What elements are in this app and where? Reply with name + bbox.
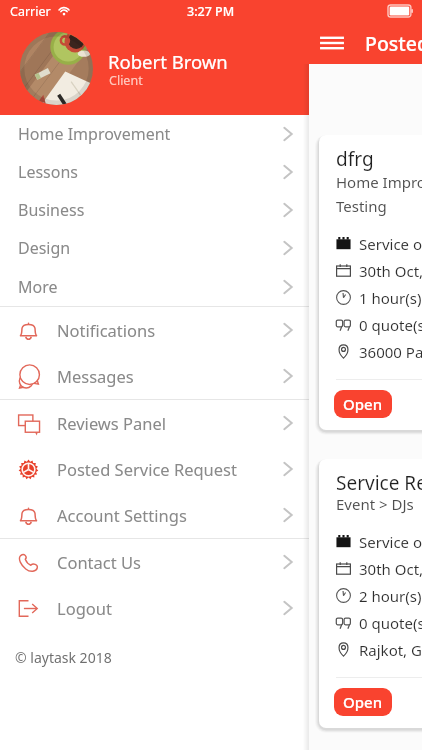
button[interactable]: More <box>0 267 309 306</box>
staticText: 36000 Paris <box>359 342 422 362</box>
staticText: Posted Service Request <box>57 458 237 480</box>
button[interactable]: Open <box>334 688 392 716</box>
staticText: Open <box>343 394 383 414</box>
button[interactable]: Notifications <box>0 307 309 353</box>
staticText: 0 quote(s) <box>359 315 422 335</box>
staticText: Service of <box>359 532 422 552</box>
staticText: 30th Oct, 2018 <box>359 261 422 281</box>
button[interactable]: Reviews Panel <box>0 400 309 446</box>
staticText: Open <box>343 692 383 712</box>
staticText: Home Improvement <box>18 123 171 145</box>
button[interactable]: Account Settings <box>0 492 309 538</box>
staticText: 30th Oct, 2018 <box>359 559 422 579</box>
button[interactable]: Logout <box>0 585 309 631</box>
button[interactable]: Messages <box>0 353 309 399</box>
staticText: Messages <box>57 365 134 387</box>
staticText: Client <box>109 72 143 89</box>
staticText: Rajkot, Gujarat <box>359 640 422 660</box>
staticText: Service of <box>359 234 422 254</box>
staticText: Design <box>18 237 71 259</box>
button[interactable]: Contact Us <box>0 539 309 585</box>
staticText: Service Request <box>336 470 422 496</box>
button[interactable]: Lessons <box>0 153 309 191</box>
button[interactable]: Home Improvement <box>0 115 309 153</box>
staticText: 2 hour(s) <box>359 586 422 606</box>
staticText: Posted Service <box>365 30 422 57</box>
button[interactable]: Posted Service Request <box>0 446 309 492</box>
staticText: 1 hour(s) <box>359 288 422 308</box>
staticText: 3:27 PM <box>187 3 235 20</box>
button[interactable]: Business <box>0 191 309 229</box>
staticText: Business <box>18 199 85 221</box>
staticText: Lessons <box>18 161 78 183</box>
button[interactable]: dfrg <box>319 135 422 430</box>
staticText: More <box>18 276 58 298</box>
staticText: Event > DJs <box>336 494 414 514</box>
staticText: Robert Brown <box>108 49 228 74</box>
staticText: Contact Us <box>57 551 141 573</box>
button[interactable]: Service Request <box>319 459 422 728</box>
staticText: 0 quote(s) <box>359 613 422 633</box>
staticText: Logout <box>57 597 112 619</box>
staticText: Notifications <box>57 319 156 341</box>
staticText: dfrg <box>336 146 374 172</box>
button[interactable]: Design <box>0 229 309 267</box>
staticText: © laytask 2018 <box>15 648 112 667</box>
button[interactable]: Open navigation menu <box>319 30 345 56</box>
staticText: Carrier <box>10 3 51 20</box>
button[interactable]: Open <box>334 390 392 418</box>
staticText: Testing <box>336 196 387 216</box>
staticText: Account Settings <box>57 504 187 526</box>
staticText: Home Improvement <box>336 172 422 192</box>
staticText: Reviews Panel <box>57 412 167 434</box>
